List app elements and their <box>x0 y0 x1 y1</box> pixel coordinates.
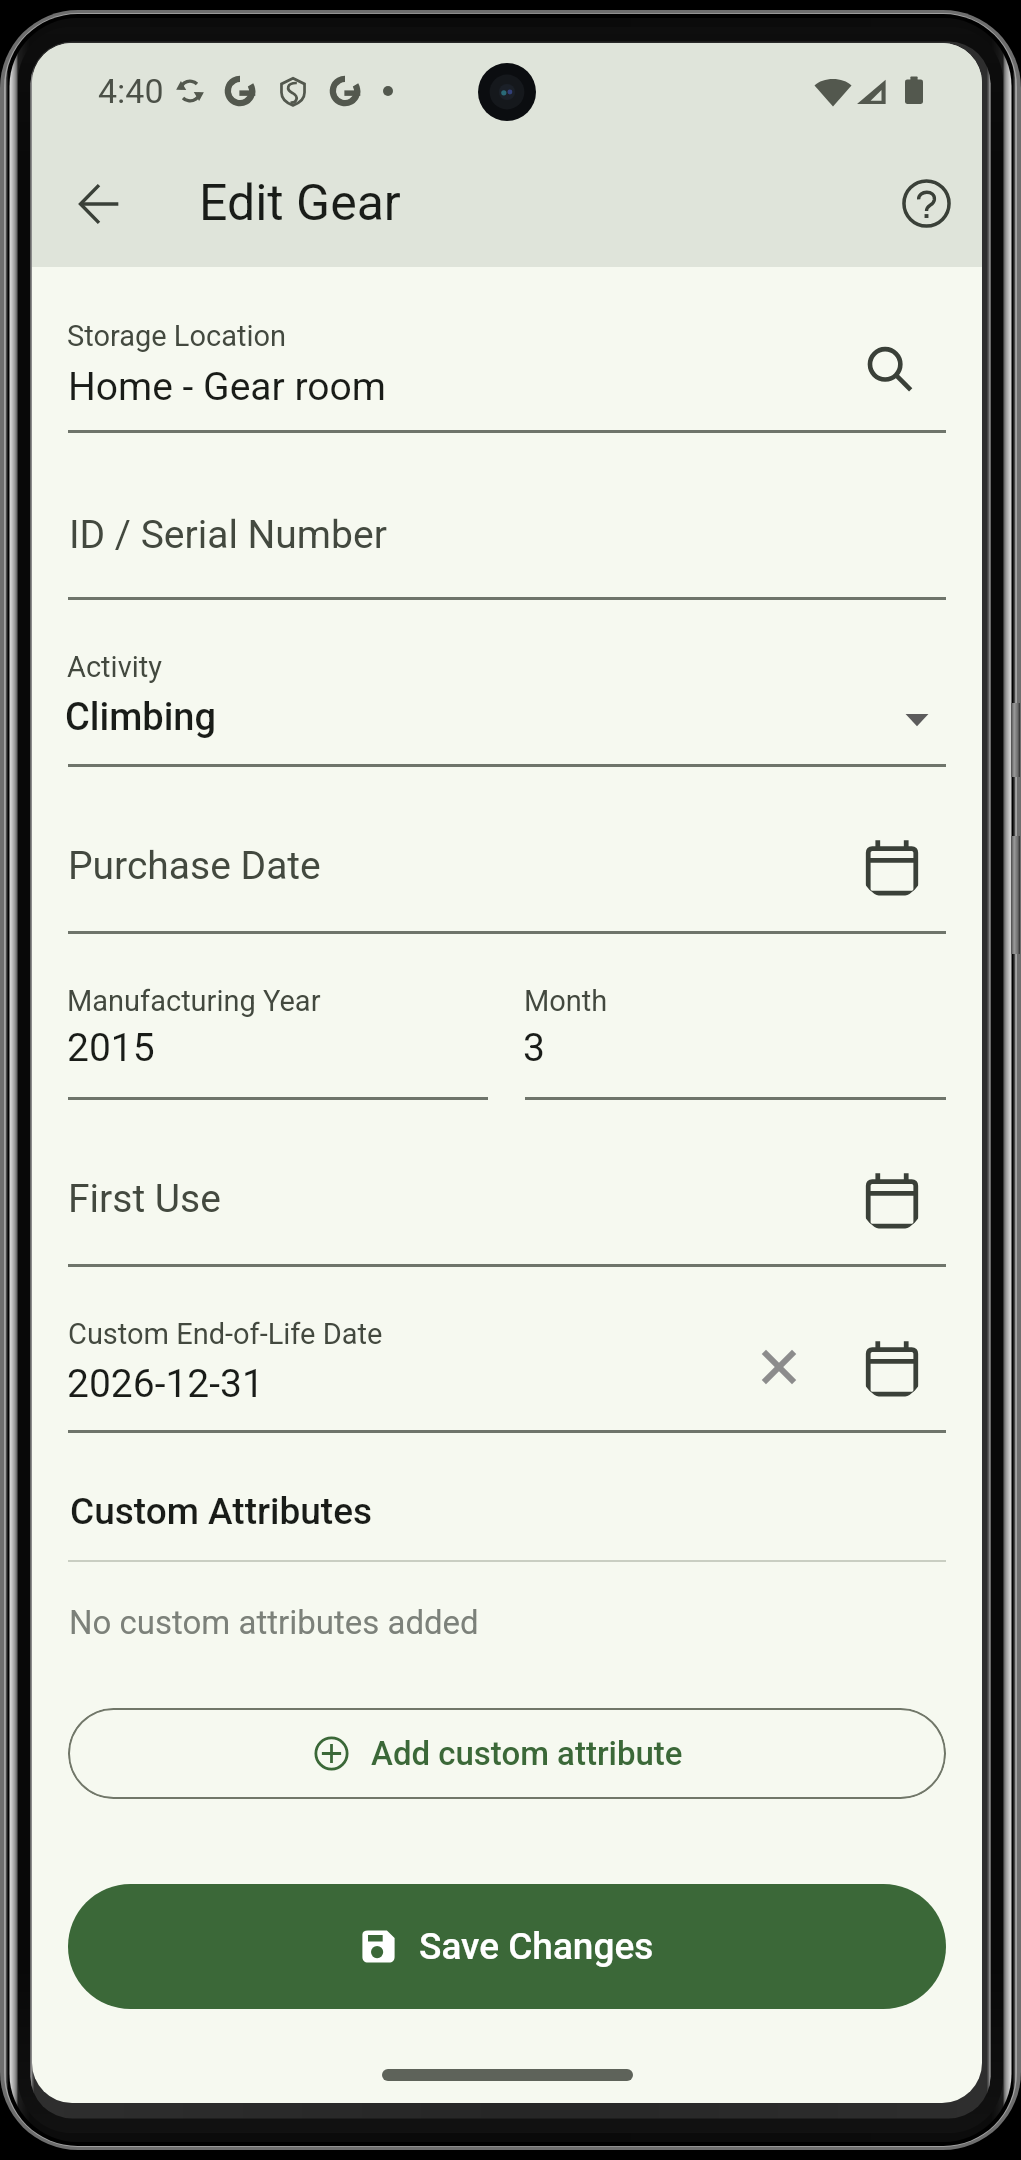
button[interactable]: Back <box>61 166 137 242</box>
button[interactable]: Add custom attribute <box>68 1708 946 1799</box>
button[interactable]: Custom End-of-Life Date field <box>68 1290 946 1432</box>
staticText: Purchase Date <box>68 843 321 889</box>
staticText: Month <box>524 984 608 1018</box>
button[interactable]: Select activity <box>891 694 943 746</box>
button[interactable]: Purchase Date field <box>68 800 946 933</box>
button[interactable]: Pick purchase date <box>860 835 924 899</box>
button[interactable]: Pick first use date <box>860 1168 924 1232</box>
staticText: Home - Gear room <box>68 364 386 410</box>
staticText: Custom End-of-Life Date <box>68 1317 383 1351</box>
staticText: No custom attributes added <box>69 1603 479 1642</box>
button[interactable]: Pick end of life date <box>860 1336 924 1400</box>
staticText: Edit Gear <box>199 174 401 233</box>
staticText: Storage Location <box>67 319 287 353</box>
staticText: Save Changes <box>419 1925 654 1968</box>
button[interactable]: Help <box>888 165 964 241</box>
staticText: 3 <box>523 1025 545 1071</box>
button[interactable]: ID / Serial Number field <box>68 460 946 599</box>
button[interactable]: First Use field <box>68 1130 946 1266</box>
button[interactable]: Save Changes <box>68 1884 946 2009</box>
staticText: 2015 <box>67 1025 155 1071</box>
staticText: 4:40 <box>98 71 164 111</box>
staticText: Activity <box>67 650 162 684</box>
staticText: Custom Attributes <box>70 1490 373 1533</box>
button[interactable]: Clear end of life date <box>747 1335 811 1399</box>
staticText: First Use <box>68 1176 221 1222</box>
button[interactable]: Manufacturing Year field <box>68 960 488 1099</box>
button[interactable]: Search storage location <box>857 337 923 403</box>
button[interactable]: Activity field <box>68 620 946 766</box>
staticText: Add custom attribute <box>371 1734 683 1773</box>
button[interactable]: Month field <box>525 960 946 1099</box>
staticText: Climbing <box>65 695 217 740</box>
staticText: 2026-12-31 <box>67 1361 264 1407</box>
staticText: ID / Serial Number <box>69 512 387 558</box>
staticText: Manufacturing Year <box>67 984 321 1018</box>
button[interactable]: Storage Location field <box>68 290 946 432</box>
